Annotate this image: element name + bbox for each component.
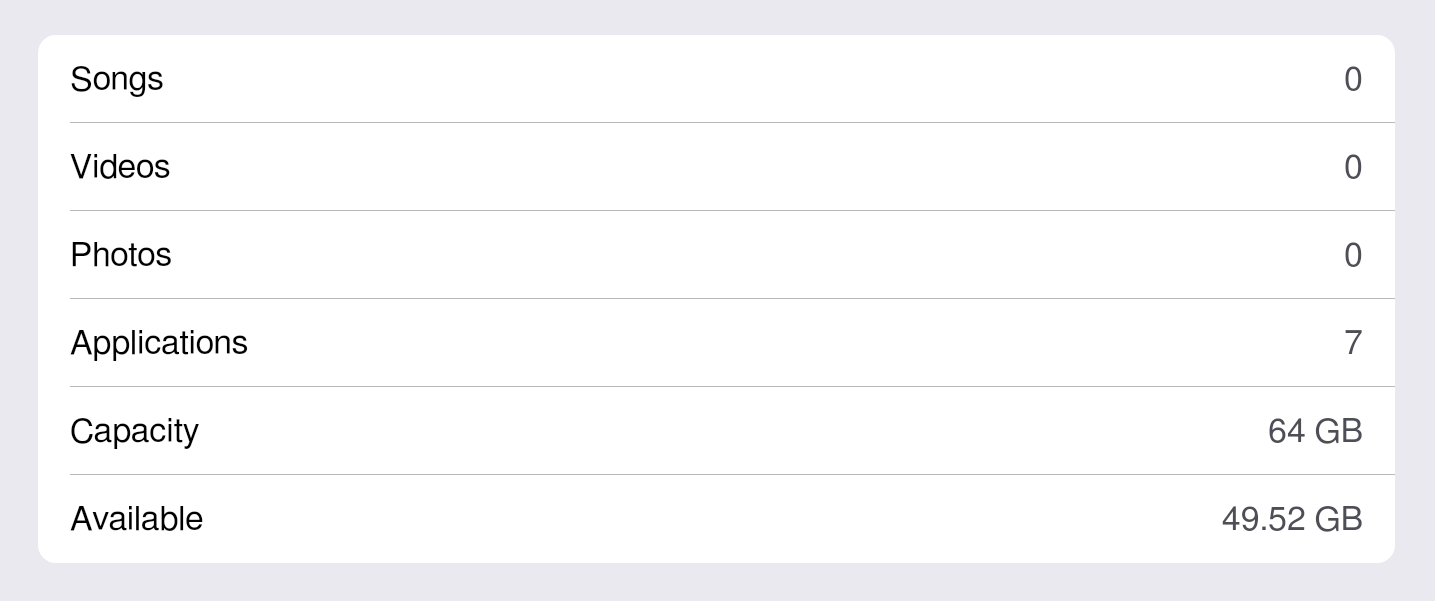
staticText: 49.52 GB xyxy=(1221,503,1363,537)
staticText: Capacity xyxy=(70,415,200,449)
staticText: Photos xyxy=(70,239,172,273)
staticText: Applications xyxy=(70,327,249,361)
staticText: Songs xyxy=(70,63,164,97)
staticText: 0 xyxy=(1344,239,1363,273)
button[interactable]: Available xyxy=(38,475,1395,563)
button[interactable]: Videos xyxy=(38,123,1395,211)
staticText: Available xyxy=(70,503,204,537)
button[interactable]: Capacity xyxy=(38,387,1395,475)
button[interactable]: Applications xyxy=(38,299,1395,387)
staticText: Videos xyxy=(70,151,171,185)
staticText: 0 xyxy=(1344,63,1363,97)
staticText: 64 GB xyxy=(1268,415,1363,449)
button[interactable]: Photos xyxy=(38,211,1395,299)
button[interactable]: Songs xyxy=(38,35,1395,123)
staticText: 7 xyxy=(1344,327,1363,361)
staticText: 0 xyxy=(1344,151,1363,185)
